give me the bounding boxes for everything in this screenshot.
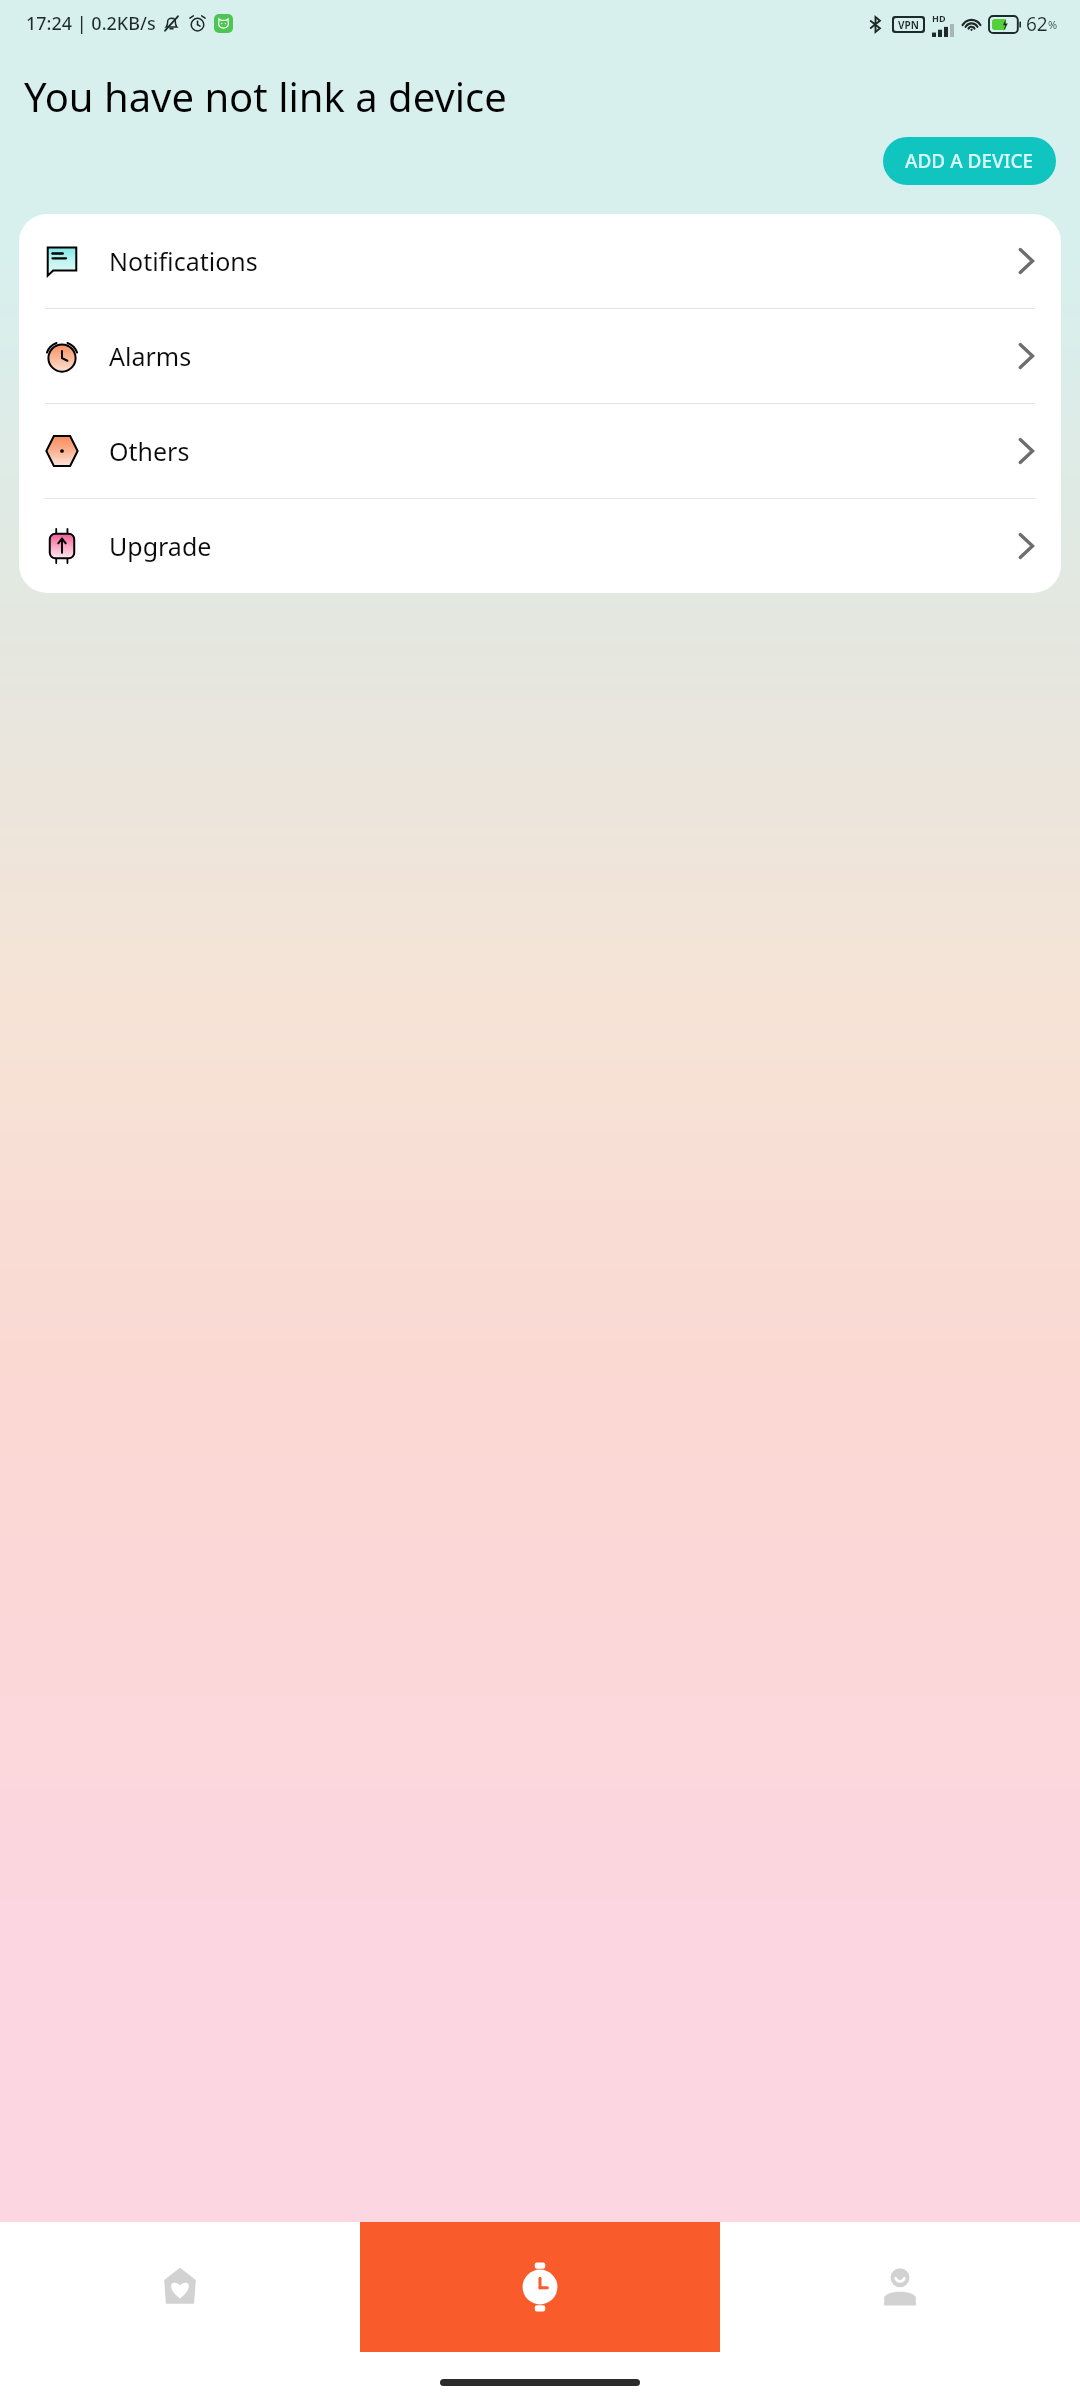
staticText: VPN — [898, 18, 919, 31]
staticText: 17:24 | 0.2KB/s — [26, 11, 156, 36]
staticText: 62 — [1026, 11, 1048, 37]
button[interactable]: Notifications — [19, 214, 1061, 308]
button[interactable]: Upgrade — [19, 499, 1061, 593]
button[interactable]: ADD A DEVICE — [883, 137, 1056, 185]
staticText: Alarms — [109, 339, 192, 373]
button[interactable]: Device — [360, 2222, 720, 2352]
staticText: You have not link a device — [24, 69, 1026, 123]
button[interactable]: Alarms — [19, 309, 1061, 403]
staticText: Notifications — [109, 244, 258, 278]
button[interactable]: Others — [19, 404, 1061, 498]
button[interactable]: Health — [0, 2222, 360, 2352]
staticText: Others — [109, 434, 190, 468]
staticText: Upgrade — [109, 529, 212, 563]
staticText: HD — [932, 12, 946, 24]
button[interactable]: Profile — [720, 2222, 1080, 2352]
staticText: % — [1048, 17, 1058, 32]
staticText: ADD A DEVICE — [905, 148, 1034, 174]
